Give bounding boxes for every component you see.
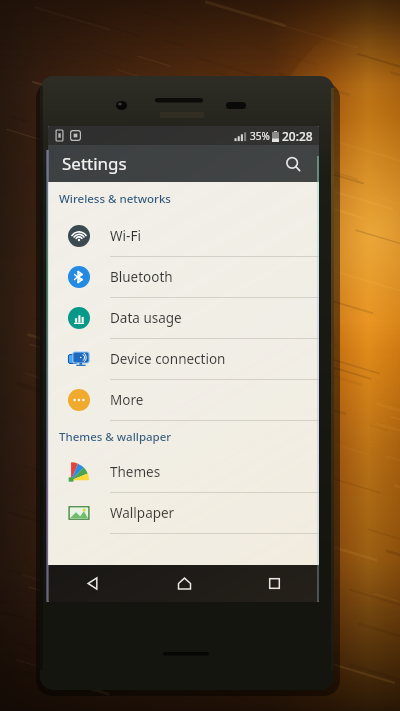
staticText: Wallpaper bbox=[110, 504, 175, 522]
button[interactable]: Back bbox=[48, 565, 139, 602]
button[interactable]: Wallpaper bbox=[48, 493, 319, 533]
button[interactable]: Search bbox=[278, 149, 308, 179]
button[interactable]: Home bbox=[139, 565, 229, 602]
staticText: Data usage bbox=[110, 309, 182, 327]
staticText: Wi-Fi bbox=[110, 227, 141, 245]
staticText: 35% bbox=[250, 129, 270, 143]
staticText: Device connection bbox=[110, 350, 226, 368]
button[interactable]: More bbox=[48, 380, 319, 420]
staticText: Wireless & networks bbox=[59, 191, 171, 207]
button[interactable]: Bluetooth bbox=[48, 257, 319, 297]
staticText: Bluetooth bbox=[110, 268, 173, 286]
staticText: Settings bbox=[62, 152, 127, 175]
button[interactable]: Device connection bbox=[48, 339, 319, 379]
button[interactable]: Wi-Fi bbox=[48, 216, 319, 256]
staticText: 20:28 bbox=[282, 128, 313, 144]
staticText: Themes bbox=[110, 463, 161, 481]
button[interactable]: Data usage bbox=[48, 298, 319, 338]
button[interactable]: Themes bbox=[48, 452, 319, 492]
staticText: Themes & wallpaper bbox=[59, 429, 172, 445]
staticText: More bbox=[110, 391, 144, 409]
button[interactable]: Recent apps bbox=[229, 565, 319, 602]
